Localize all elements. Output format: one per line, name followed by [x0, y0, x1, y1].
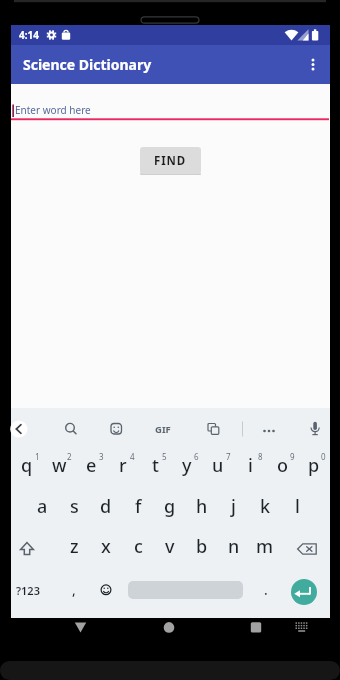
staticText: 8	[258, 451, 263, 462]
staticText: w	[52, 453, 67, 478]
staticText: f	[135, 494, 142, 519]
button[interactable]: w	[44, 452, 74, 478]
button[interactable]: x	[91, 533, 121, 559]
staticText: 4	[130, 451, 135, 462]
button[interactable]: j	[218, 493, 248, 519]
staticText: e	[86, 453, 97, 478]
staticText: Enter word here	[15, 103, 91, 117]
staticText: 1	[35, 451, 40, 462]
button[interactable]: b	[187, 533, 217, 559]
staticText: 5	[162, 451, 167, 462]
button[interactable]: q	[12, 452, 42, 478]
button[interactable]	[14, 539, 40, 559]
button[interactable]: g	[155, 493, 185, 519]
button[interactable]: c	[123, 533, 153, 559]
staticText: v	[165, 534, 175, 559]
button[interactable]: FIND	[140, 147, 201, 174]
button[interactable]: e	[76, 452, 106, 478]
button[interactable]: y	[172, 452, 202, 478]
button[interactable]: k	[250, 493, 280, 519]
button[interactable]: d	[91, 493, 121, 519]
staticText: i	[248, 453, 253, 478]
staticText: n	[228, 534, 240, 559]
staticText: h	[196, 494, 208, 519]
button[interactable]: GIF	[150, 421, 176, 437]
button[interactable]	[303, 52, 325, 78]
button[interactable]: u	[203, 452, 233, 478]
button[interactable]	[288, 614, 316, 640]
staticText: g	[164, 494, 176, 519]
staticText: k	[260, 494, 271, 519]
staticText: .	[264, 581, 268, 599]
staticText: 4:14	[19, 28, 39, 42]
button[interactable]	[66, 614, 96, 640]
staticText: m	[256, 534, 274, 559]
staticText: z	[70, 534, 79, 559]
button[interactable]: f	[123, 493, 153, 519]
staticText: u	[212, 453, 224, 478]
button[interactable]: l	[282, 493, 312, 519]
button[interactable]	[258, 418, 280, 440]
button[interactable]	[304, 418, 326, 440]
button[interactable]: i	[235, 452, 265, 478]
staticText: Science Dictionary	[23, 55, 152, 74]
staticText: s	[70, 494, 79, 519]
staticText: 3	[99, 451, 104, 462]
button[interactable]: s	[59, 493, 89, 519]
button[interactable]: t	[140, 452, 170, 478]
button[interactable]	[291, 579, 317, 605]
button[interactable]: p	[299, 452, 329, 478]
staticText: 9	[290, 451, 295, 462]
staticText: ?123	[16, 583, 40, 598]
button[interactable]	[241, 614, 271, 640]
staticText: FIND	[154, 153, 187, 169]
staticText: l	[295, 494, 300, 519]
button[interactable]	[105, 418, 127, 440]
button[interactable]: .	[258, 578, 274, 602]
button[interactable]	[296, 539, 322, 559]
button[interactable]: r	[108, 452, 138, 478]
button[interactable]: z	[59, 533, 89, 559]
staticText: x	[101, 534, 111, 559]
button[interactable]: ?123	[11, 580, 44, 600]
staticText: c	[134, 534, 143, 559]
button[interactable]: v	[155, 533, 185, 559]
staticText: d	[100, 494, 112, 519]
staticText: q	[21, 453, 33, 478]
button[interactable]: ,	[66, 578, 82, 602]
staticText: b	[196, 534, 208, 559]
button[interactable]: h	[187, 493, 217, 519]
staticText: 2	[67, 451, 72, 462]
staticText: o	[277, 453, 288, 478]
staticText: a	[37, 494, 48, 519]
staticText: j	[231, 494, 236, 519]
staticText: 6	[194, 451, 199, 462]
button[interactable]	[203, 418, 225, 440]
staticText: t	[152, 453, 159, 478]
button[interactable]: n	[219, 533, 249, 559]
button[interactable]: o	[267, 452, 297, 478]
button[interactable]	[11, 420, 29, 438]
button[interactable]: m	[250, 533, 280, 559]
button[interactable]: a	[27, 493, 57, 519]
staticText: r	[119, 453, 127, 478]
staticText: 7	[226, 451, 231, 462]
staticText: p	[308, 453, 320, 478]
button[interactable]	[99, 583, 113, 597]
button[interactable]	[60, 418, 82, 440]
staticText: y	[182, 453, 192, 478]
staticText: GIF	[155, 423, 171, 436]
staticText: ,	[72, 581, 76, 599]
button[interactable]	[154, 614, 184, 640]
staticText: 0	[321, 451, 326, 462]
